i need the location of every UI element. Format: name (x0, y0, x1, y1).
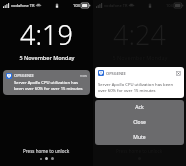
button[interactable]: OPSGENIE (95, 67, 184, 98)
staticText: Server Apollo CPU utilization has been o… (14, 80, 87, 92)
staticText: Press home to unlock (23, 148, 70, 154)
button[interactable]: Dismiss notification (176, 71, 181, 76)
staticText: Server Apollo CPU utilization has been o… (98, 82, 181, 94)
staticText: Mute (133, 134, 146, 141)
staticText: Close (133, 119, 146, 126)
staticText: now (80, 73, 87, 78)
button[interactable]: Ack (95, 100, 184, 115)
staticText: OPSGENIE (106, 71, 126, 76)
staticText: vodafone TR (104, 3, 128, 8)
staticText: 103 (73, 3, 80, 8)
button[interactable]: Close (95, 115, 184, 130)
button[interactable]: OPSGENIE (3, 70, 90, 95)
staticText: OPSGENIE (14, 73, 34, 78)
staticText: 4:24 (113, 16, 166, 53)
staticText: 5 November Monday (19, 54, 75, 61)
button[interactable]: Mute (95, 130, 184, 145)
staticText: 4:19 (20, 16, 73, 53)
staticText: Ack (135, 104, 144, 111)
staticText: vodafone TR (11, 3, 35, 8)
staticText: 103 (166, 3, 173, 8)
